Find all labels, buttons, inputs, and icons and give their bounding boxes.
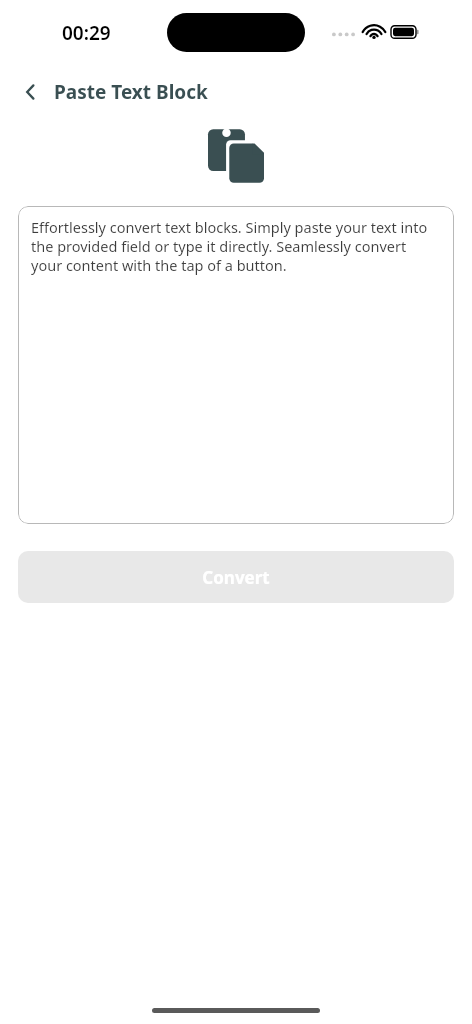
button[interactable]: Effortlessly convert text blocks. Simply… — [18, 206, 454, 524]
staticText: 00:29 — [62, 20, 111, 46]
staticText: Paste Text Block — [54, 79, 208, 105]
button[interactable]: Back — [14, 75, 48, 109]
staticText: Effortlessly convert text blocks. Simply… — [31, 217, 441, 275]
other: Paste clipboard — [208, 126, 264, 184]
button[interactable]: Convert — [18, 551, 454, 603]
staticText: Convert — [202, 566, 270, 589]
